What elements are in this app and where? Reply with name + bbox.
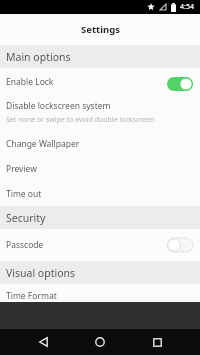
button[interactable]: Preview — [0, 156, 200, 181]
button[interactable]: Enable Lock — [0, 68, 200, 96]
button[interactable] — [137, 329, 177, 355]
staticText: Disable lockscreen system — [6, 100, 111, 112]
staticText: Visual options — [6, 266, 76, 280]
staticText: Security — [6, 211, 46, 225]
staticText: Change Wallpaper — [6, 138, 80, 150]
button[interactable]: Time Format — [0, 284, 200, 302]
staticText: Time out — [6, 188, 42, 200]
staticText: Passcode — [6, 239, 44, 251]
button[interactable] — [80, 329, 120, 355]
staticText: 4:54 — [180, 2, 194, 12]
staticText: Time Format — [6, 290, 57, 302]
staticText: Settings — [81, 23, 120, 36]
staticText: Main options — [6, 50, 71, 64]
staticText: Enable Lock — [6, 76, 54, 88]
button[interactable]: Passcode — [0, 229, 200, 261]
button[interactable]: Disable lockscreen system — [0, 96, 200, 131]
button[interactable]: Time out — [0, 181, 200, 206]
staticText: Preview — [6, 163, 37, 175]
button[interactable]: Change Wallpaper — [0, 131, 200, 156]
staticText: Set none or swipe to avoid double locksc… — [6, 115, 155, 125]
button[interactable] — [23, 329, 63, 355]
